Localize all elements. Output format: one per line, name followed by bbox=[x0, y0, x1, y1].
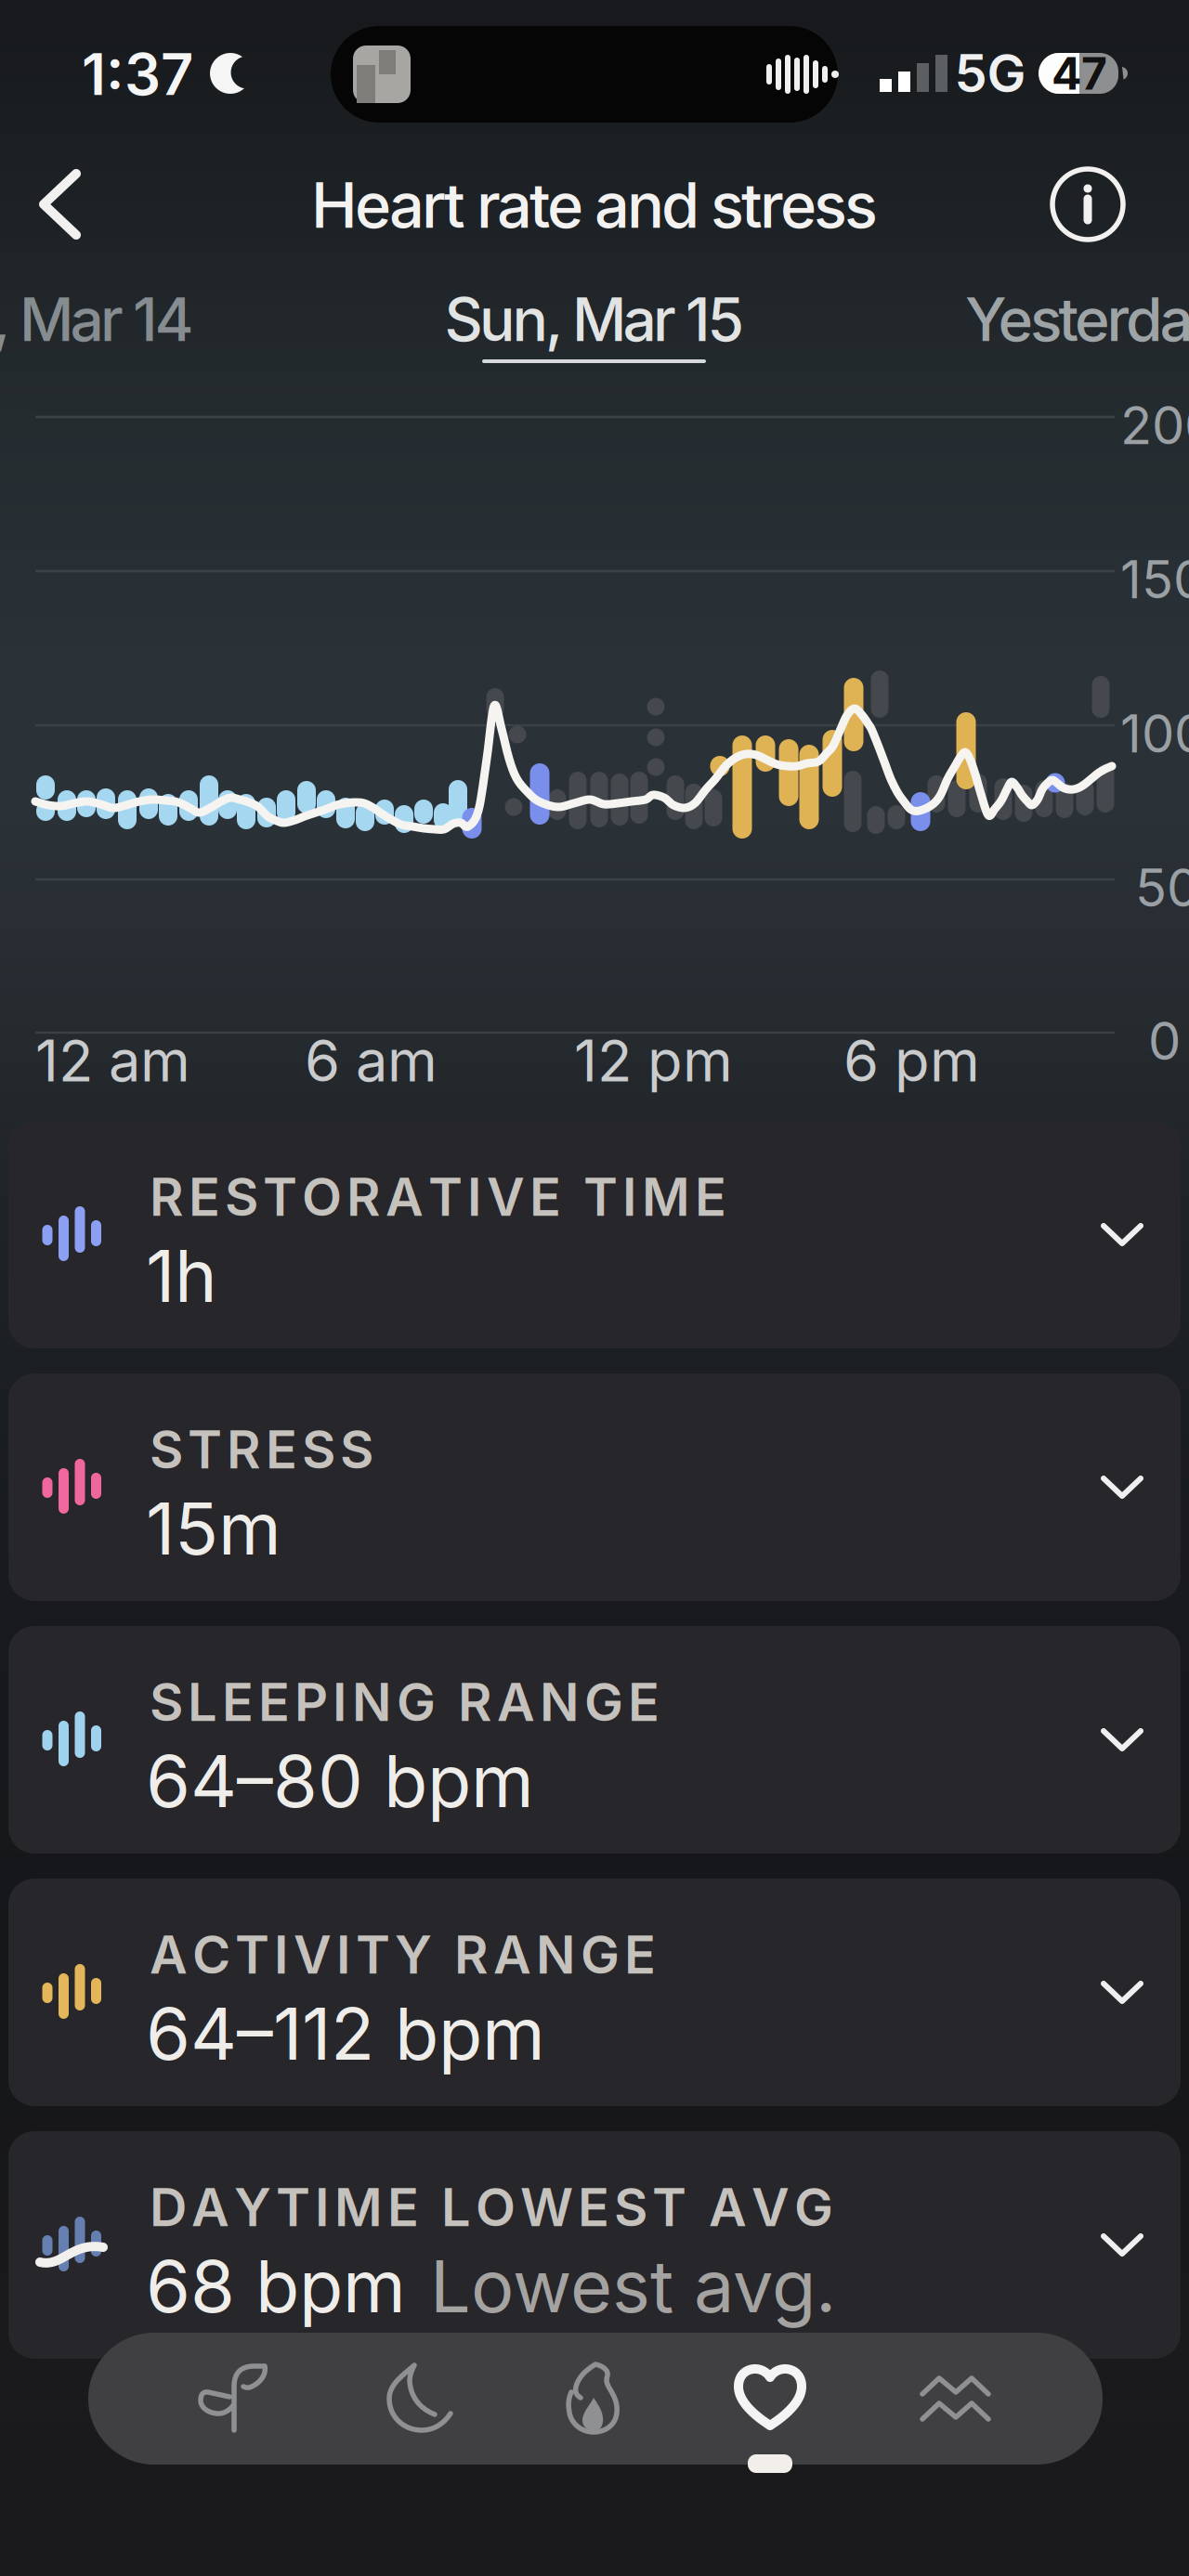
staticText: 47 bbox=[1052, 46, 1107, 100]
staticText: 100 bbox=[1120, 702, 1189, 765]
staticText: 200 bbox=[1120, 394, 1189, 457]
staticText: S L E E P I N G R A N G E bbox=[150, 1671, 660, 1734]
button[interactable]: Yesterday bbox=[965, 284, 1189, 355]
button[interactable]: D A Y T I M E L O W E S T A V G bbox=[8, 2131, 1181, 2359]
button[interactable]: Stress bbox=[876, 2334, 1034, 2464]
button[interactable]: R E S T O R A T I V E T I M E bbox=[8, 1121, 1181, 1348]
staticText: 12 pm bbox=[574, 1026, 733, 1095]
staticText: Sun, Mar 15 bbox=[444, 284, 745, 355]
staticText: D A Y T I M E L O W E S T A V G bbox=[150, 2176, 833, 2239]
button[interactable]: Activity bbox=[516, 2334, 673, 2464]
staticText: 6 am bbox=[305, 1026, 438, 1095]
button[interactable]: S L E E P I N G R A N G E bbox=[8, 1626, 1181, 1854]
staticText: Yesterday bbox=[965, 284, 1189, 355]
button[interactable]: Readiness bbox=[155, 2334, 313, 2464]
staticText: 64–80 bpm bbox=[146, 1737, 534, 1824]
staticText: S T R E S S bbox=[150, 1418, 373, 1481]
staticText: A C T I V I T Y R A N G E bbox=[150, 1923, 656, 1986]
button[interactable]: Heart rate bbox=[691, 2334, 849, 2464]
button[interactable]: Sleep bbox=[341, 2334, 499, 2464]
staticText: 6 pm bbox=[843, 1026, 980, 1095]
staticText: 150 bbox=[1120, 548, 1189, 611]
staticText: Heart rate and stress bbox=[311, 168, 878, 243]
staticText: 1h bbox=[146, 1232, 217, 1319]
staticText: 50 bbox=[1135, 856, 1189, 919]
staticText: Lowest avg. bbox=[430, 2243, 836, 2330]
button[interactable]: Sun, Mar 15 bbox=[444, 284, 745, 355]
staticText: 5G bbox=[954, 42, 1026, 105]
staticText: 68 bpm bbox=[146, 2243, 406, 2330]
staticText: 1:37 bbox=[82, 40, 193, 109]
button[interactable]: Info bbox=[1044, 161, 1131, 248]
staticText: R E S T O R A T I V E T I M E bbox=[150, 1165, 726, 1228]
staticText: 0 bbox=[1148, 1009, 1181, 1072]
staticText: Sat, Mar 14 bbox=[0, 284, 194, 355]
staticText: 64–112 bpm bbox=[146, 1990, 545, 2077]
button[interactable]: S T R E S S bbox=[8, 1373, 1181, 1601]
staticText: 15m bbox=[146, 1485, 281, 1572]
button[interactable]: Sat, Mar 14 bbox=[0, 284, 194, 355]
button[interactable]: A C T I V I T Y R A N G E bbox=[8, 1879, 1181, 2106]
staticText: 12 am bbox=[35, 1026, 190, 1095]
button[interactable]: Back bbox=[19, 161, 102, 248]
